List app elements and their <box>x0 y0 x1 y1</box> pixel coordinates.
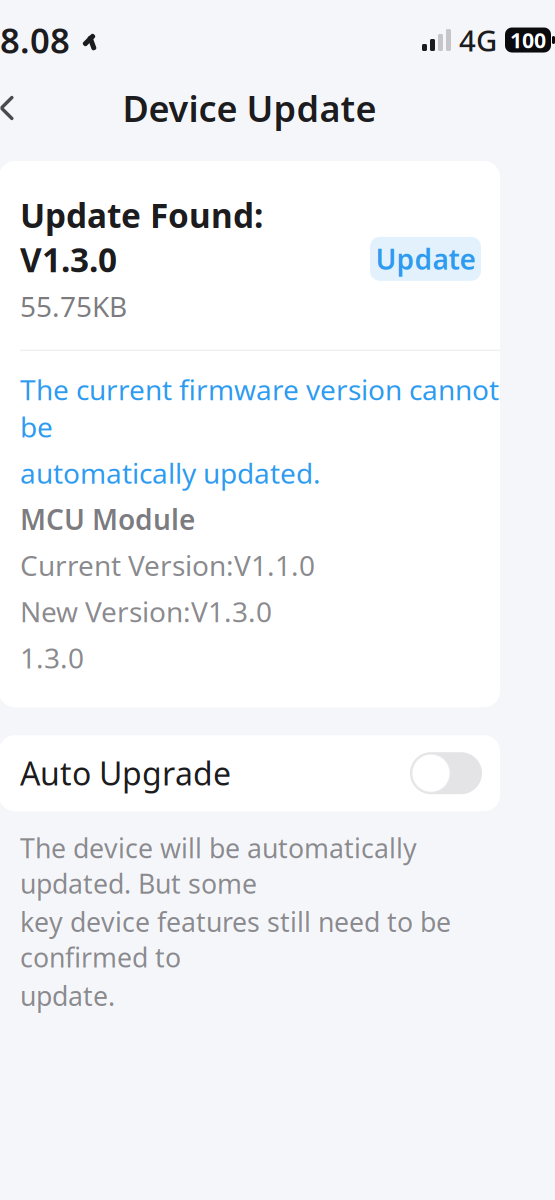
staticText: MCU Module <box>20 500 195 538</box>
staticText: Current Version:V1.1.0 <box>20 547 315 584</box>
staticText: 100 <box>510 26 546 54</box>
staticText: Auto Upgrade <box>20 752 231 794</box>
staticText: Update <box>375 240 475 277</box>
staticText: update. <box>20 978 115 1013</box>
staticText: 8.08 <box>0 17 70 63</box>
staticText: The device will be automatically updated… <box>20 830 417 901</box>
button[interactable]: Back <box>0 80 35 136</box>
button[interactable]: Update <box>370 237 481 281</box>
staticText: Device Update <box>122 84 376 132</box>
staticText: automatically updated. <box>20 454 321 491</box>
button[interactable]: Auto Upgrade <box>0 735 500 811</box>
staticText: The current firmware version cannot be <box>20 371 499 445</box>
staticText: New Version:V1.3.0 <box>20 593 272 630</box>
staticText: 1.3.0 <box>20 639 84 676</box>
staticText: 55.75KB <box>20 287 127 325</box>
staticText: Update Found: V1.3.0 <box>20 193 263 281</box>
staticText: key device features still need to be con… <box>20 904 451 975</box>
staticText: 4G <box>459 20 497 59</box>
